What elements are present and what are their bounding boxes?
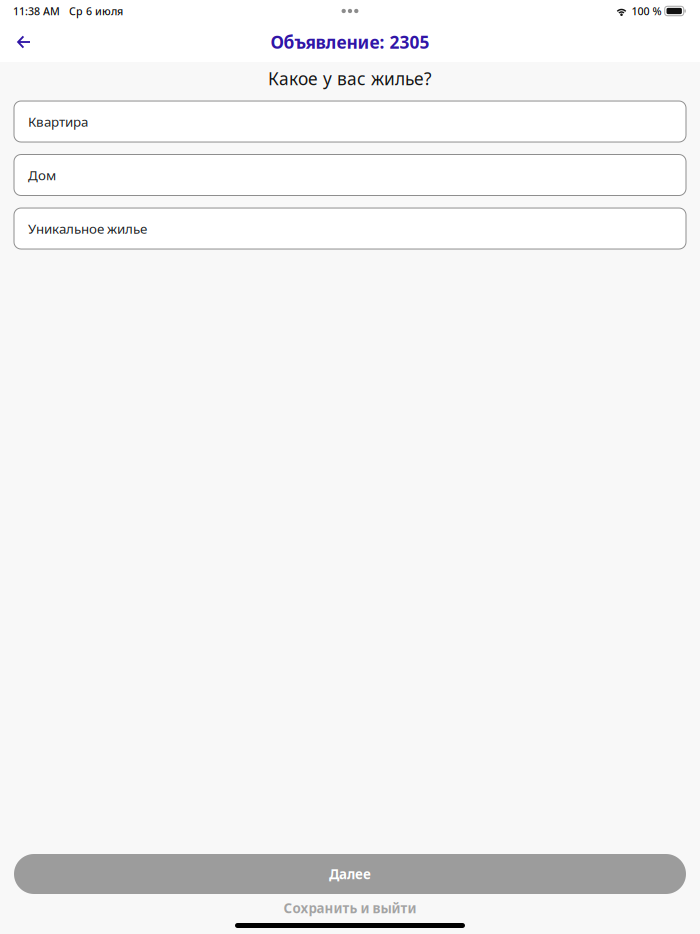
staticText: Уникальное жилье bbox=[28, 220, 147, 237]
button[interactable]: Далее bbox=[14, 854, 686, 894]
staticText: Далее bbox=[329, 865, 371, 883]
staticText: 11:38 AM bbox=[13, 4, 60, 18]
staticText: Какое у вас жилье? bbox=[268, 67, 432, 90]
button[interactable]: Квартира bbox=[14, 101, 686, 142]
staticText: Сохранить и выйти bbox=[283, 899, 416, 917]
staticText: Объявление: 2305 bbox=[270, 30, 429, 53]
staticText: Квартира bbox=[28, 113, 88, 130]
staticText: Ср 6 июля bbox=[69, 4, 123, 18]
staticText: 100 % bbox=[631, 4, 661, 18]
button[interactable]: Уникальное жилье bbox=[14, 208, 686, 249]
staticText: Дом bbox=[28, 166, 56, 184]
button[interactable]: Back bbox=[0, 22, 48, 62]
button[interactable]: Дом bbox=[14, 154, 686, 195]
button[interactable]: Сохранить и выйти bbox=[0, 894, 700, 922]
